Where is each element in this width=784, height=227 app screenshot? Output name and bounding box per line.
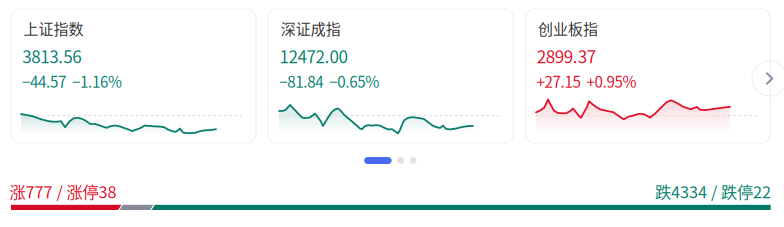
staticText: 涨777 / 涨停38	[10, 179, 117, 203]
staticText: −44.57	[22, 70, 66, 92]
button[interactable]: Next page	[752, 61, 784, 96]
staticText: −81.84	[279, 70, 323, 92]
staticText: 12472.00	[279, 43, 347, 68]
staticText: 跌4334 / 跌停22	[655, 179, 771, 203]
button[interactable]: 上证指数	[0, 0, 784, 227]
staticText: +0.95%	[586, 70, 636, 92]
staticText: 深证成指	[281, 17, 341, 39]
staticText: 2899.37	[537, 43, 596, 68]
button[interactable]: 深证成指	[0, 0, 784, 227]
staticText: 创业板指	[538, 17, 598, 39]
staticText: +27.15	[536, 70, 580, 92]
button[interactable]: 创业板指	[0, 0, 784, 227]
staticText: −1.16%	[72, 70, 122, 92]
staticText: 上证指数	[23, 17, 83, 39]
staticText: 3813.56	[22, 43, 81, 68]
staticText: −0.65%	[329, 70, 379, 92]
